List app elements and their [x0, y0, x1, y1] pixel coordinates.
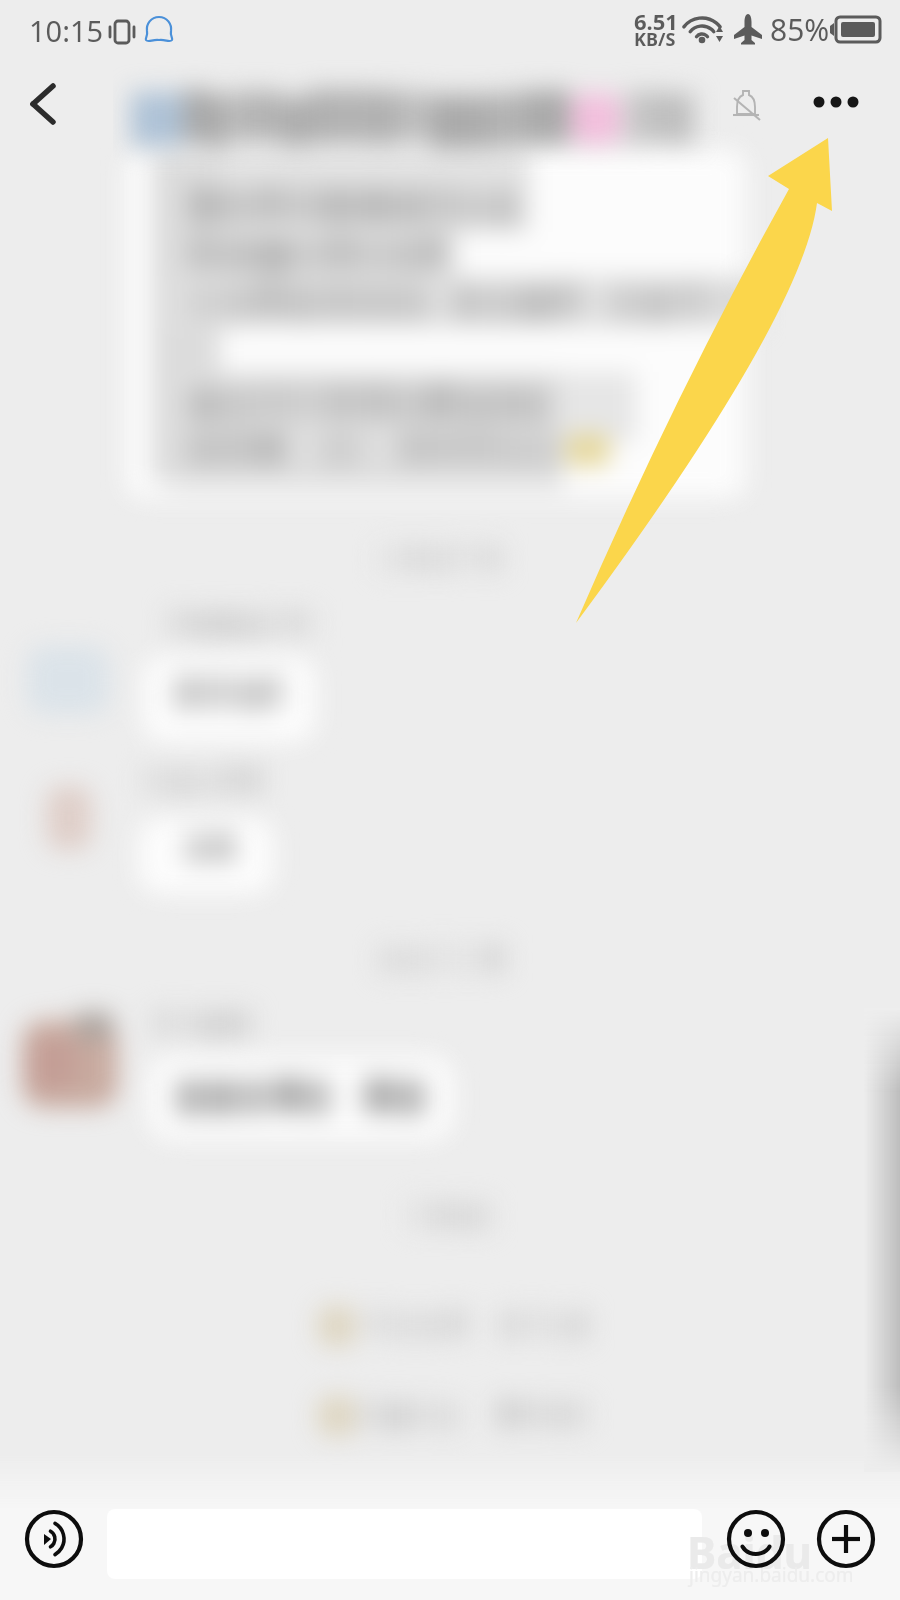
button[interactable]: Notifications muted [722, 74, 774, 130]
button[interactable]: Group chat name [120, 72, 720, 134]
staticText: Baidu [687, 1522, 813, 1582]
button[interactable]: More options [800, 76, 872, 128]
button[interactable]: Voice message [25, 1510, 83, 1568]
button[interactable]: Message bubble [146, 1004, 458, 1144]
staticText: 10:15 [29, 11, 104, 50]
button[interactable]: Back [8, 70, 72, 138]
button[interactable]: Message bubble [136, 760, 280, 896]
button[interactable]: Add attachment [817, 1510, 875, 1568]
button[interactable]: Sender avatar [16, 1012, 126, 1112]
staticText: 85% [770, 9, 830, 50]
button[interactable]: Emoji [727, 1510, 785, 1568]
staticText: KB/S [634, 27, 676, 52]
button[interactable]: Sender avatar [34, 776, 110, 864]
staticText: jingyan.baidu.com [689, 1562, 854, 1588]
button[interactable]: Sender avatar [18, 636, 122, 728]
button[interactable]: Message bubble [140, 604, 320, 744]
staticText: 6.51 [634, 6, 678, 36]
button[interactable]: Pinned group announcement [126, 150, 746, 498]
